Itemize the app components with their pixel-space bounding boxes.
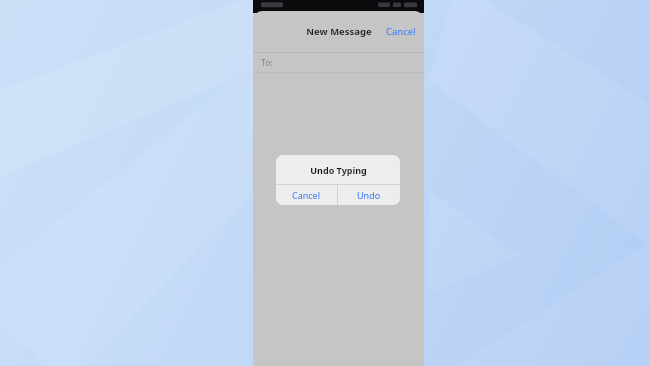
staticText: To: [261,57,273,69]
button[interactable]: To: [253,53,424,72]
button[interactable]: Cancel [276,185,337,205]
button[interactable]: Undo [338,185,400,205]
staticText: Undo [357,189,381,201]
staticText: Cancel [386,25,416,38]
staticText: New Message [306,25,372,38]
staticText: Cancel [292,189,321,201]
staticText: Undo Typing [310,164,367,176]
button[interactable]: Cancel [382,19,420,44]
